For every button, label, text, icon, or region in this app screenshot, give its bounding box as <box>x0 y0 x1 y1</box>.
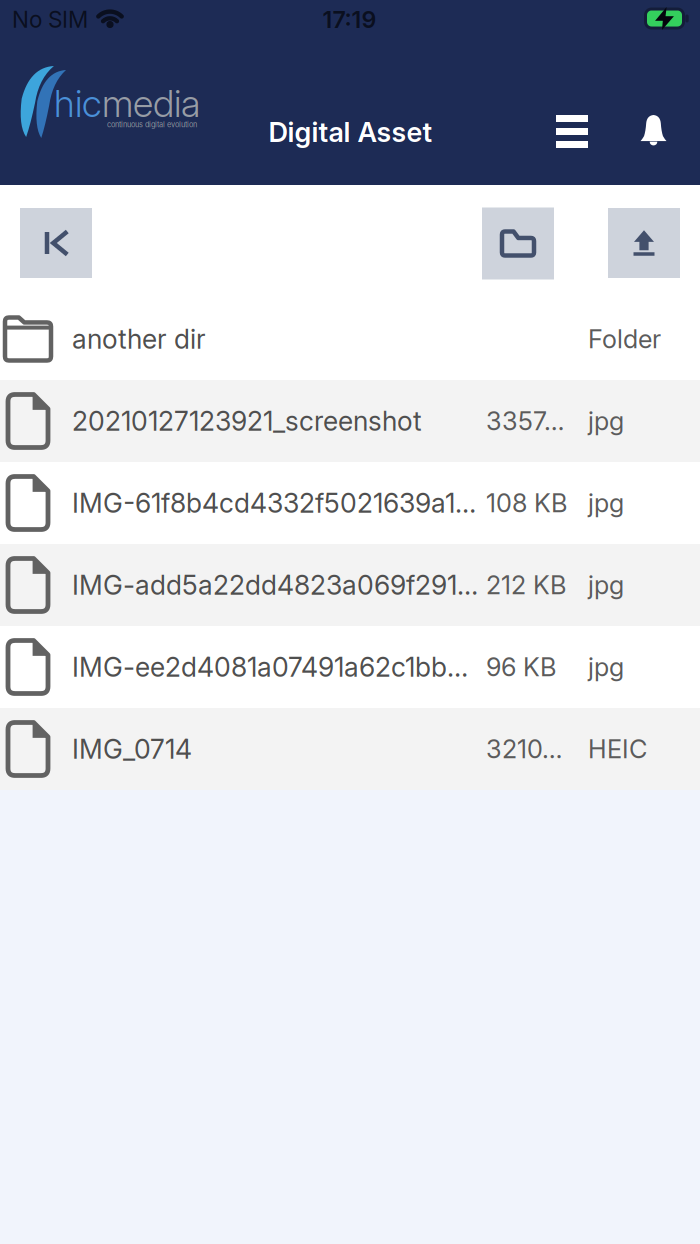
button[interactable]: Notifications <box>640 115 667 146</box>
staticText: IMG-add5a22dd4823a069f291… <box>72 569 478 601</box>
staticText: continuous digital evolution <box>107 120 197 129</box>
staticText: jpg <box>588 652 624 682</box>
staticText: IMG-ee2d4081a07491a62c1bb… <box>72 651 468 683</box>
staticText: jpg <box>588 406 624 436</box>
staticText: another dir <box>72 323 206 355</box>
staticText: hic <box>54 81 102 126</box>
staticText: 108 KB <box>486 488 567 518</box>
button[interactable]: another dir <box>0 298 700 380</box>
staticText: jpg <box>588 570 624 600</box>
button[interactable]: 20210127123921_screenshot <box>0 380 700 462</box>
staticText: Folder <box>588 324 661 354</box>
staticText: 20210127123921_screenshot <box>72 405 422 437</box>
staticText: jpg <box>588 488 624 518</box>
staticText: No SIM <box>12 6 88 33</box>
button[interactable]: IMG-ee2d4081a07491a62c1bb… <box>0 626 700 708</box>
button[interactable]: Back to start <box>20 208 92 278</box>
button[interactable]: Upload <box>608 208 680 278</box>
staticText: 96 KB <box>486 652 556 682</box>
button[interactable]: IMG-add5a22dd4823a069f291… <box>0 544 700 626</box>
button[interactable]: IMG_0714 <box>0 708 700 790</box>
staticText: 17:19 <box>322 5 376 34</box>
staticText: Digital Asset <box>268 115 432 149</box>
button[interactable]: IMG-61f8b4cd4332f5021639a1… <box>0 462 700 544</box>
staticText: 3210… <box>486 734 562 764</box>
staticText: 3357… <box>486 406 564 436</box>
button[interactable]: Menu <box>556 115 588 148</box>
staticText: media <box>102 81 200 126</box>
staticText: IMG-61f8b4cd4332f5021639a1… <box>72 487 476 519</box>
button[interactable]: New folder <box>482 207 554 279</box>
staticText: IMG_0714 <box>72 733 192 765</box>
staticText: 212 KB <box>486 570 566 600</box>
staticText: HEIC <box>588 734 647 764</box>
